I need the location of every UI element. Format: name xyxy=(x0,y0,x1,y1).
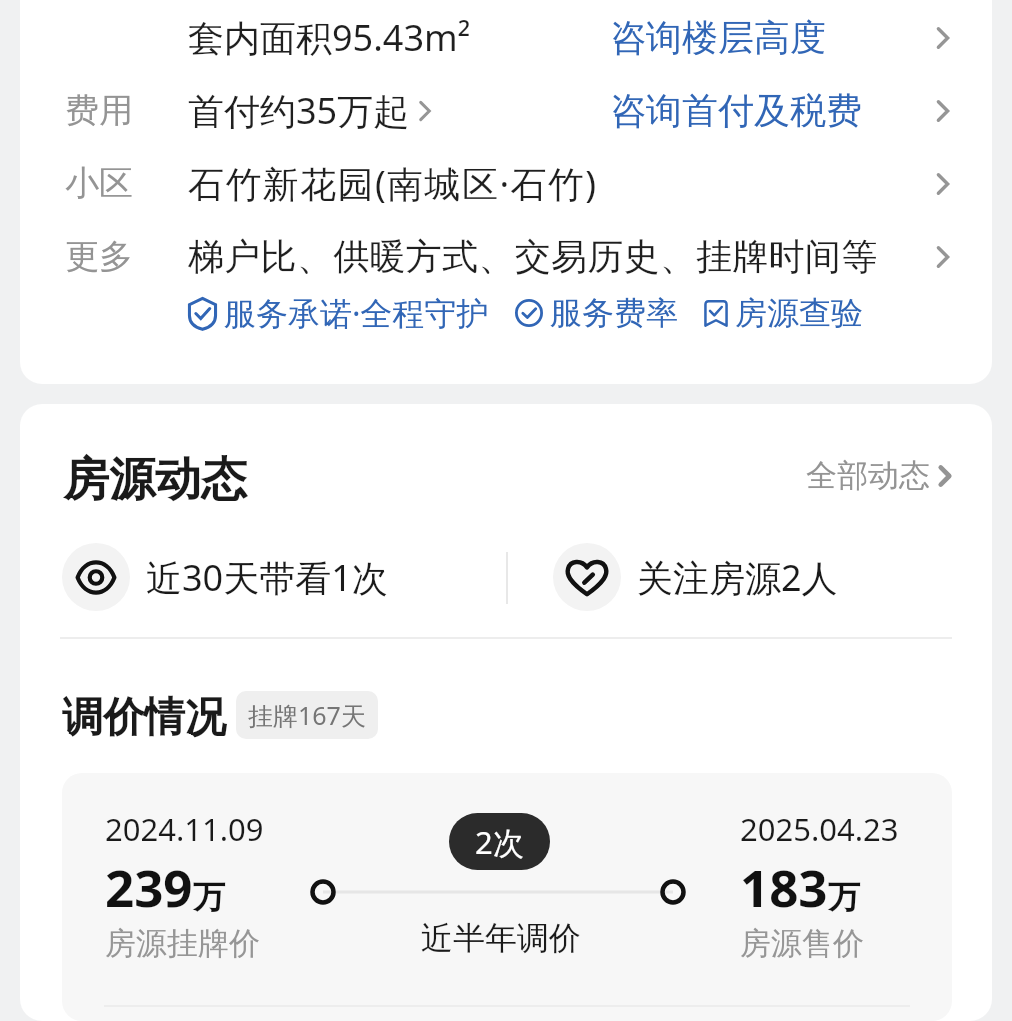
staticText: 费用 xyxy=(65,89,133,132)
staticText: 183 xyxy=(740,852,828,921)
staticText: 咨询楼层高度 xyxy=(610,15,826,60)
button[interactable]: 服务承诺·全程守护 xyxy=(188,291,489,335)
button[interactable]: Open details xyxy=(929,243,957,271)
staticText: 关注房源2人 xyxy=(637,553,838,602)
staticText: 2次 xyxy=(475,821,524,863)
button[interactable]: Open details xyxy=(929,170,957,198)
button[interactable]: 费用 xyxy=(20,74,992,147)
button[interactable]: Open details xyxy=(929,97,957,125)
staticText: 万 xyxy=(193,877,225,917)
button[interactable]: View all updates xyxy=(806,456,958,495)
staticText: 2024.11.09 xyxy=(105,808,264,850)
staticText: 近30天带看1次 xyxy=(146,553,388,602)
staticText: 咨询首付及税费 xyxy=(610,88,862,133)
button[interactable]: 套内面积95.43m² xyxy=(20,1,992,74)
staticText: 近半年调价 xyxy=(421,918,581,958)
staticText: 房源挂牌价 xyxy=(105,924,260,963)
button[interactable]: 咨询楼层高度 xyxy=(610,1,826,74)
button[interactable]: 2次 xyxy=(449,813,550,870)
staticText: 挂牌167天 xyxy=(248,698,366,732)
staticText: 全部动态 xyxy=(806,456,930,495)
staticText: 服务费率 xyxy=(550,293,678,333)
button[interactable]: 更多 xyxy=(20,220,992,293)
staticText: 石竹新花园(南城区·石竹) xyxy=(188,159,598,208)
staticText: 梯户比、供暖方式、交易历史、挂牌时间等 xyxy=(188,234,878,279)
button[interactable]: 咨询首付及税费 xyxy=(610,74,862,147)
staticText: 小区 xyxy=(65,162,133,205)
staticText: 服务承诺·全程守护 xyxy=(224,291,489,335)
button[interactable]: Open details xyxy=(929,24,957,52)
staticText: 房源查验 xyxy=(735,293,863,333)
staticText: 调价情况 xyxy=(62,692,226,744)
button[interactable]: 关注房源2人 xyxy=(553,543,838,611)
staticText: 更多 xyxy=(65,235,133,278)
button[interactable]: 近30天带看1次 xyxy=(62,543,388,611)
button[interactable]: 房源查验 xyxy=(704,293,863,333)
button[interactable]: 小区 xyxy=(20,147,992,220)
button[interactable]: 服务费率 xyxy=(515,293,678,333)
staticText: 房源售价 xyxy=(740,924,864,963)
staticText: 首付约35万起 xyxy=(188,86,410,135)
staticText: 2025.04.23 xyxy=(740,808,899,850)
staticText: 房源动态 xyxy=(63,451,247,509)
staticText: 239 xyxy=(105,852,193,921)
staticText: 万 xyxy=(828,877,860,917)
staticText: 套内面积95.43m² xyxy=(188,13,471,62)
